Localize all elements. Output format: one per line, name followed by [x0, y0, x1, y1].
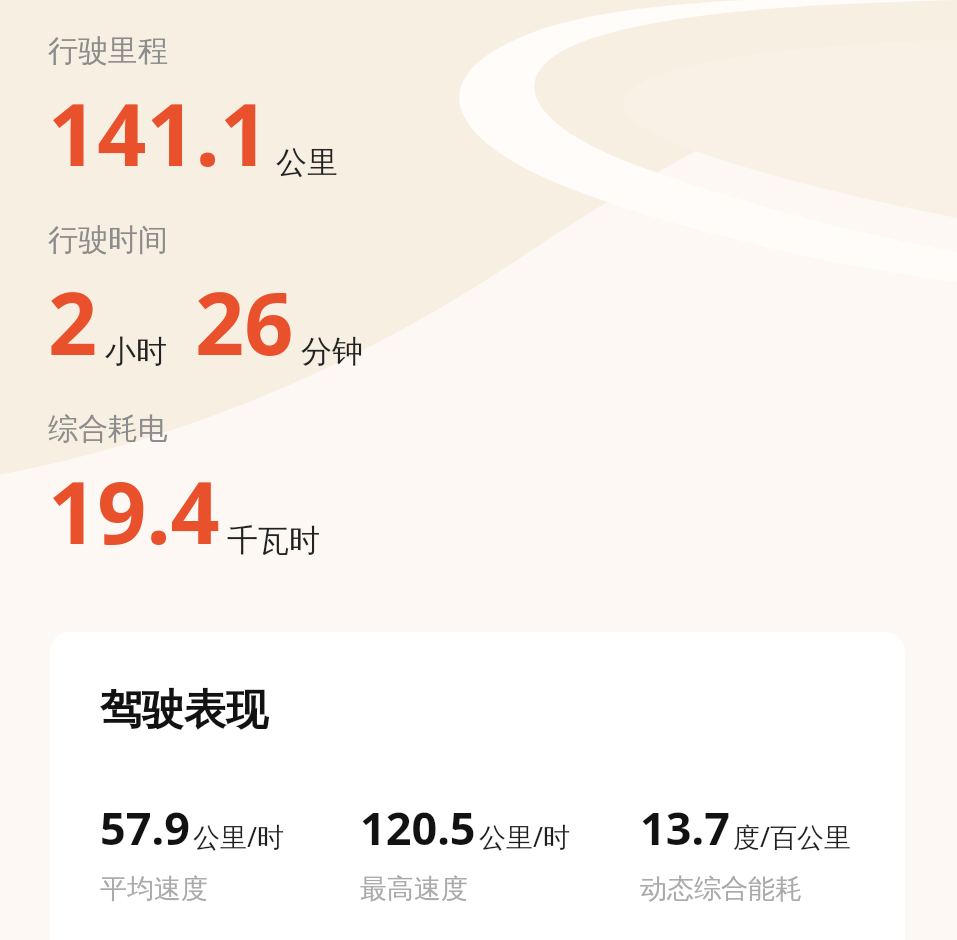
staticText: 公里/时 — [479, 818, 571, 855]
staticText: 120.5 — [360, 797, 476, 858]
staticText: 小时 — [105, 332, 167, 371]
staticText: 千瓦时 — [227, 521, 320, 560]
staticText: 度/百公里 — [733, 818, 852, 855]
staticText: 19.4 — [48, 452, 220, 569]
staticText: 综合耗电 — [48, 410, 168, 448]
staticText: 公里 — [276, 143, 338, 182]
staticText: 动态综合能耗 — [640, 872, 802, 906]
staticText: 最高速度 — [360, 872, 468, 906]
staticText: 分钟 — [301, 332, 363, 371]
staticText: 141.1 — [48, 74, 269, 191]
staticText: 驾驶表现 — [100, 684, 268, 737]
staticText: 26 — [195, 263, 294, 380]
staticText: 57.9 — [100, 797, 190, 858]
staticText: 行驶时间 — [48, 221, 168, 259]
staticText: 2 — [48, 263, 98, 380]
staticText: 平均速度 — [100, 872, 208, 906]
staticText: 公里/时 — [193, 818, 285, 855]
staticText: 行驶里程 — [48, 32, 168, 70]
button[interactable]: 驾驶表现 — [50, 632, 905, 940]
staticText: 13.7 — [640, 797, 730, 858]
